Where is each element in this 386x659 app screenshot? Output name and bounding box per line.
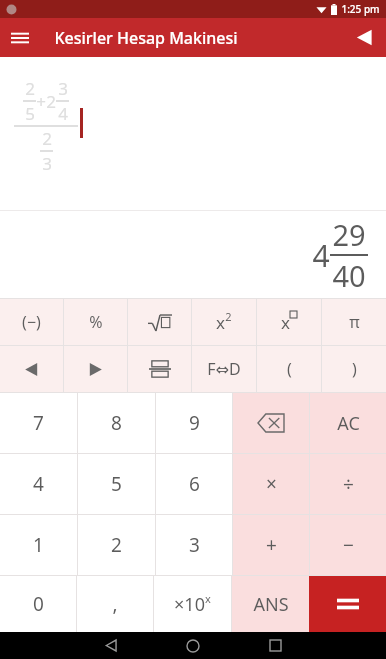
staticText: )	[352, 358, 357, 380]
staticText: ÷	[343, 471, 354, 497]
button[interactable]: ÷	[310, 454, 386, 514]
button[interactable]: ANS	[232, 576, 309, 632]
button[interactable]: 8	[78, 393, 155, 453]
staticText: 2	[225, 309, 232, 324]
button[interactable]: Move right	[64, 346, 127, 392]
button[interactable]: 6	[156, 454, 232, 514]
staticText: 1:25 pm	[341, 2, 380, 16]
button[interactable]: x to the power	[257, 299, 321, 345]
staticText: 7	[33, 410, 44, 436]
button[interactable]: F⇔D	[192, 346, 256, 392]
button[interactable]: 1	[0, 515, 77, 575]
button[interactable]: Recent apps	[260, 632, 290, 659]
button[interactable]: Backspace	[233, 393, 309, 453]
staticText: 4	[33, 471, 44, 497]
staticText: (	[287, 358, 292, 380]
staticText: 4	[312, 235, 330, 276]
button[interactable]: Home	[178, 632, 208, 659]
staticText: ANS	[253, 592, 289, 617]
button[interactable]: AC	[310, 393, 386, 453]
staticText: 6	[189, 471, 200, 497]
staticText: 1	[33, 532, 44, 558]
button[interactable]: Fraction	[128, 346, 191, 392]
button[interactable]: 7	[0, 393, 77, 453]
staticText: 3	[189, 532, 200, 558]
button[interactable]: ,	[77, 576, 153, 632]
staticText: 8	[111, 410, 122, 436]
staticText: 9	[189, 410, 200, 436]
staticText: 5	[111, 471, 122, 497]
staticText: π	[349, 311, 360, 333]
button[interactable]: 3	[156, 515, 232, 575]
staticText: ,	[112, 591, 118, 617]
staticText: 4	[58, 102, 68, 125]
button[interactable]: Move left	[0, 346, 63, 392]
button[interactable]: )	[322, 346, 386, 392]
staticText: 5	[25, 102, 35, 125]
staticText: x	[205, 591, 211, 606]
staticText: 3	[58, 77, 68, 100]
staticText: Kesirler Hesap Makinesi	[54, 27, 238, 49]
staticText: 2	[42, 127, 52, 150]
button[interactable]: (−)	[0, 299, 63, 345]
button[interactable]: Square root	[128, 299, 191, 345]
staticText: x	[216, 311, 225, 334]
button[interactable]: Menu	[0, 18, 40, 57]
staticText: 2	[25, 77, 35, 100]
button[interactable]: x	[192, 299, 256, 345]
button[interactable]: ×	[233, 454, 309, 514]
button[interactable]: 9	[156, 393, 232, 453]
staticText: 0	[33, 591, 44, 617]
staticText: %	[89, 311, 103, 333]
button[interactable]: −	[310, 515, 386, 575]
button[interactable]: +	[233, 515, 309, 575]
staticText: x	[281, 311, 290, 334]
staticText: 3	[42, 152, 52, 175]
staticText: AC	[337, 411, 360, 436]
button[interactable]: (	[257, 346, 321, 392]
staticText: −	[343, 532, 354, 558]
button[interactable]: Back	[342, 18, 386, 57]
staticText: +	[266, 532, 277, 558]
button[interactable]: ×10	[154, 576, 231, 632]
staticText: ×10	[174, 592, 205, 617]
button[interactable]: 2	[78, 515, 155, 575]
staticText: (−)	[22, 311, 41, 333]
button[interactable]: %	[64, 299, 127, 345]
staticText: 2	[46, 90, 56, 113]
staticText: 29	[332, 215, 366, 254]
button[interactable]: 0	[0, 576, 76, 632]
button[interactable]: Equals	[309, 576, 386, 632]
staticText: ×	[266, 471, 277, 497]
staticText: 40	[332, 256, 366, 295]
button[interactable]: π	[322, 299, 386, 345]
staticText: +	[36, 90, 46, 113]
button[interactable]: Back	[96, 632, 126, 659]
button[interactable]: 5	[78, 454, 155, 514]
staticText: 2	[111, 532, 122, 558]
button[interactable]: 4	[0, 454, 77, 514]
staticText: F⇔D	[207, 358, 241, 380]
